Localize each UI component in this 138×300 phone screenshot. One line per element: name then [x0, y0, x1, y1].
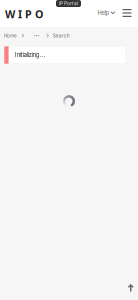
staticText: Home — [4, 33, 17, 38]
button[interactable]: Home — [4, 33, 17, 38]
button[interactable]: Help — [97, 9, 115, 16]
staticText: IP Portal — [59, 1, 78, 6]
staticText: ••• — [33, 33, 39, 38]
button[interactable]: W I P O — [5, 7, 43, 21]
staticText: Search — [53, 33, 70, 39]
staticText: Initializing... — [15, 51, 46, 58]
button[interactable]: Menu — [122, 9, 131, 17]
button[interactable]: Back to top — [127, 283, 134, 292]
staticText: Help — [97, 9, 108, 16]
staticText: W I P O — [5, 7, 43, 21]
button[interactable]: More breadcrumb items — [33, 33, 39, 38]
